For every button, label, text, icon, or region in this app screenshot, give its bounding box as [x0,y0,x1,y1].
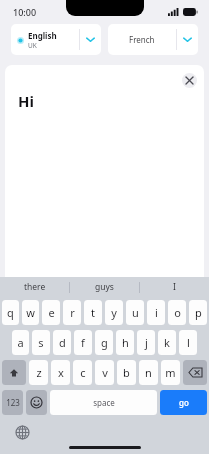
button[interactable]: s [32,330,50,355]
staticText: g [101,335,108,350]
staticText: Hi [18,91,34,111]
staticText: f [81,335,85,350]
staticText: k [164,335,170,350]
staticText: y [111,305,117,320]
staticText: h [122,335,129,350]
button[interactable]: h [116,330,134,355]
staticText: there [24,281,46,293]
staticText: UK [28,41,37,50]
staticText: guys [95,281,114,293]
button[interactable]: English [11,24,101,55]
button[interactable]: 123 [2,390,23,415]
staticText: s [38,335,44,350]
button[interactable]: d [53,330,71,355]
button[interactable]: p [189,300,207,325]
button[interactable]: m [161,360,180,385]
button[interactable]: w [22,300,39,325]
staticText: c [80,365,86,380]
staticText: u [132,305,139,320]
staticText: t [91,305,95,320]
button[interactable]: n [139,360,158,385]
button[interactable]: z [29,360,48,385]
button[interactable]: l [179,330,197,355]
button[interactable]: Change source language [80,24,101,55]
button[interactable]: i [147,300,165,325]
staticText: o [174,305,181,320]
button[interactable]: Shift [2,360,26,385]
button[interactable]: r [63,300,81,325]
staticText: space [93,397,115,408]
button[interactable]: Switch keyboard language [14,424,30,440]
button[interactable]: f [74,330,92,355]
button[interactable]: b [117,360,136,385]
staticText: x [58,365,64,380]
button[interactable]: Clear text [182,73,197,88]
button[interactable]: there [0,277,69,297]
button[interactable]: space [50,390,157,415]
button[interactable]: t [84,300,102,325]
staticText: r [70,305,75,320]
button[interactable]: Emoji [26,390,47,415]
button[interactable]: French [108,24,198,55]
button[interactable]: u [126,300,144,325]
staticText: go [179,397,189,408]
staticText: I [173,281,176,293]
staticText: b [123,365,130,380]
staticText: j [145,335,148,350]
button[interactable]: k [158,330,176,355]
staticText: z [36,365,42,380]
staticText: m [165,365,176,380]
staticText: v [102,365,108,380]
button[interactable]: e [42,300,60,325]
button[interactable]: I [140,277,209,297]
button[interactable]: Backspace [183,360,207,385]
staticText: d [59,335,66,350]
button[interactable]: g [95,330,113,355]
button[interactable]: a [12,330,29,355]
staticText: 10:00 [13,6,37,18]
staticText: q [7,305,14,320]
button[interactable]: x [51,360,70,385]
staticText: w [26,305,35,320]
button[interactable]: c [73,360,92,385]
staticText: p [195,305,202,320]
staticText: i [155,305,158,320]
staticText: 123 [6,397,20,408]
button[interactable]: v [95,360,114,385]
button[interactable]: y [105,300,123,325]
button[interactable]: o [168,300,186,325]
staticText: e [48,305,55,320]
button[interactable]: guys [70,277,139,297]
button[interactable]: Change target language [177,24,198,55]
staticText: l [187,335,190,350]
staticText: English [28,30,57,41]
staticText: a [17,335,24,350]
staticText: n [145,365,152,380]
button[interactable]: j [137,330,155,355]
button[interactable]: go [160,390,207,415]
staticText: French [129,34,155,45]
button[interactable]: q [2,300,19,325]
